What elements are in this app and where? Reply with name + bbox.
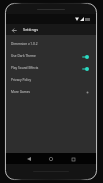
button[interactable]: More Games [5,86,97,98]
button[interactable]: Dimension v.1.0.2 [5,38,97,50]
staticText: Dimension v.1.0.2 [11,42,38,46]
button[interactable]: Recent apps [68,154,78,164]
button[interactable]: Privacy Policy [5,74,97,86]
button[interactable]: Play Sound Effects [5,62,97,74]
staticText: Settings [23,27,39,32]
staticText: Use Dark Theme [11,54,36,58]
button[interactable]: Home [46,154,56,164]
button[interactable]: Back [24,154,34,164]
staticText: Play Sound Effects [11,66,39,70]
button[interactable]: Back [11,27,17,33]
staticText: More Games [11,90,31,94]
staticText: Privacy Policy [11,78,32,82]
button[interactable]: Use Dark Theme [5,50,97,62]
